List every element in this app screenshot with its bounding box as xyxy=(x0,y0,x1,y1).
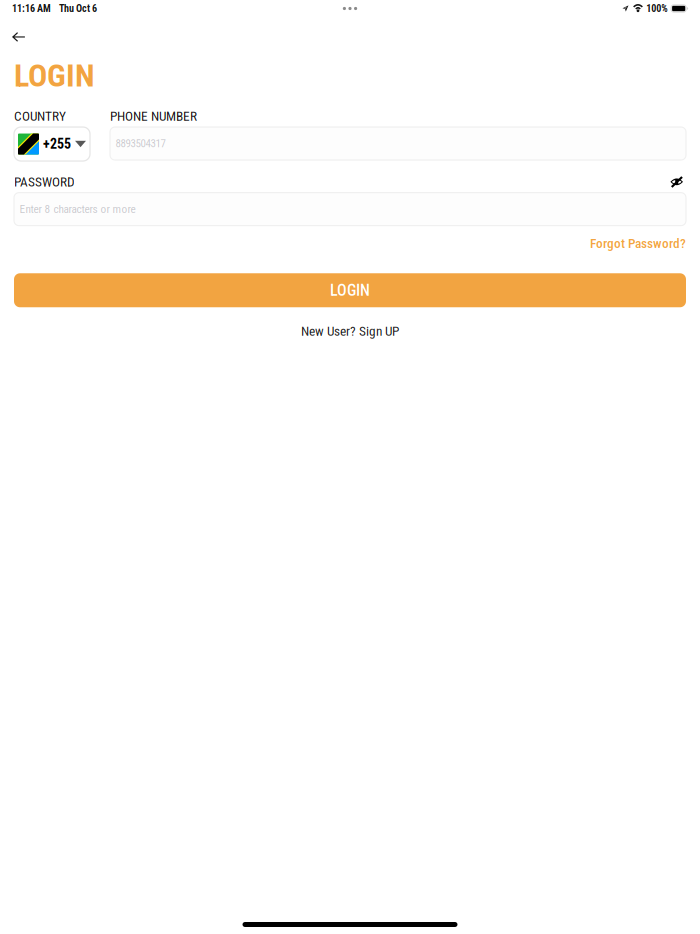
staticText: New User? Sign UP xyxy=(301,323,399,339)
staticText: 8893504317 xyxy=(115,137,165,150)
staticText: COUNTRY xyxy=(14,108,66,124)
staticText: PASSWORD xyxy=(14,174,75,190)
button[interactable]: Country code +255 xyxy=(14,127,90,161)
button[interactable]: LOGIN xyxy=(14,273,686,307)
staticText: LOGIN xyxy=(14,57,95,94)
staticText: +255 xyxy=(43,136,71,152)
button[interactable]: New User? Sign UP xyxy=(301,323,399,339)
staticText: 11:16 AM xyxy=(12,3,51,14)
button[interactable]: 8893504317 xyxy=(110,127,686,160)
button[interactable]: Forgot Password? xyxy=(590,236,686,251)
staticText: Enter 8 characters or more xyxy=(19,202,135,216)
staticText: Forgot Password? xyxy=(590,236,686,251)
staticText: Thu Oct 6 xyxy=(59,3,97,14)
staticText: LOGIN xyxy=(330,281,370,300)
staticText: PHONE NUMBER xyxy=(110,108,197,124)
button[interactable]: Show password xyxy=(670,177,686,187)
staticText: 100% xyxy=(646,3,667,14)
button[interactable]: Enter 8 characters or more xyxy=(14,193,686,226)
button[interactable]: Back xyxy=(0,17,35,48)
